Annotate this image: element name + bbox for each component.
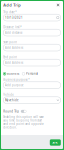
button[interactable]: Save	[50, 139, 61, 146]
staticText: Vehicle	[3, 93, 14, 96]
staticText: Personal	[26, 72, 38, 75]
staticText: Round Trip	[3, 110, 19, 113]
button[interactable]: Business	[3, 72, 19, 75]
staticText: My vehicle	[5, 98, 19, 102]
staticText: Add distance	[5, 31, 23, 34]
button[interactable]: Personal	[22, 72, 38, 75]
button[interactable]: Close	[55, 2, 61, 8]
staticText: Start point	[3, 40, 17, 44]
staticText: Add Address	[5, 46, 23, 49]
staticText: Business purpose*	[3, 78, 29, 81]
staticText: Add Address	[5, 61, 23, 64]
staticText: Add purpose	[5, 83, 24, 87]
staticText: Trip date*	[3, 10, 16, 14]
staticText: 10/13/2021	[5, 16, 23, 19]
staticText: Business	[7, 72, 19, 75]
staticText: Enabling this option will save you time …	[3, 115, 44, 129]
button[interactable]: Round Trip	[3, 110, 61, 113]
staticText: Distance (mi)*	[3, 25, 21, 29]
staticText: Save	[52, 141, 58, 144]
staticText: End point	[3, 55, 17, 59]
staticText: Add Trip	[3, 2, 21, 8]
